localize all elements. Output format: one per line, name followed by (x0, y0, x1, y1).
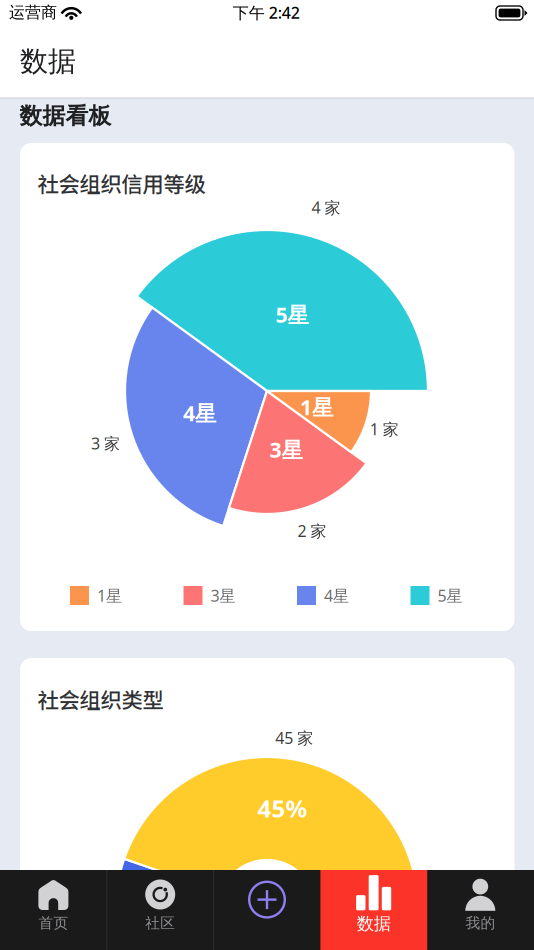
staticText: 3 家 (91, 433, 120, 454)
staticText: 首页 (38, 914, 68, 932)
staticText: 社会组织类型 (37, 684, 163, 714)
staticText: 4星 (183, 399, 216, 427)
staticText: 1 家 (370, 418, 399, 440)
staticText: 4 家 (311, 197, 340, 218)
staticText: 数据看板 (19, 102, 111, 130)
button[interactable]: 社区 (0, 0, 534, 950)
staticText: 社会组织信用等级 (37, 168, 205, 198)
staticText: 1星 (300, 393, 333, 421)
staticText: 2 家 (297, 520, 326, 541)
staticText: 运营商 (9, 3, 57, 22)
button[interactable]: 我的 (0, 0, 534, 950)
staticText: 社区 (145, 914, 175, 932)
button[interactable]: 首页 (0, 0, 534, 950)
staticText: 4星 (324, 585, 349, 606)
staticText: 1星 (97, 585, 122, 606)
staticText: 数据 (20, 44, 76, 79)
staticText: 45 家 (275, 727, 313, 748)
staticText: 45% (257, 792, 307, 824)
staticText: 数据 (357, 913, 391, 934)
staticText: 3星 (269, 435, 302, 464)
button[interactable]: 数据 (0, 0, 534, 950)
staticText: 3星 (210, 585, 235, 606)
staticText: 5星 (275, 300, 308, 329)
button[interactable]: 新建 (0, 0, 534, 950)
staticText: 5星 (437, 585, 462, 606)
staticText: 下午 2:42 (233, 2, 300, 23)
staticText: 我的 (466, 914, 496, 932)
